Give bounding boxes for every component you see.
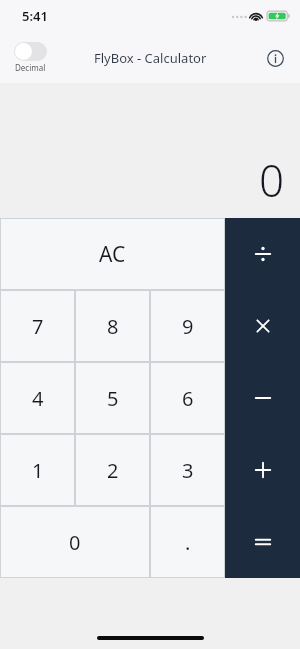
staticText: 9 — [182, 313, 194, 340]
button[interactable]: . — [150, 506, 225, 578]
staticText: FlyBox - Calculator — [94, 49, 207, 67]
staticText: 8 — [107, 313, 119, 340]
staticText: 0 — [258, 150, 284, 210]
button[interactable]: Multiply — [225, 290, 300, 362]
staticText: 3 — [182, 457, 194, 484]
button[interactable]: Divide — [225, 218, 300, 290]
button[interactable]: 1 — [0, 434, 75, 506]
staticText: 5:41 — [22, 7, 48, 25]
button[interactable]: AC — [0, 218, 225, 290]
button[interactable]: 4 — [0, 362, 75, 434]
button[interactable]: 8 — [75, 290, 150, 362]
button[interactable]: 2 — [75, 434, 150, 506]
staticText: Decimal — [15, 62, 46, 73]
staticText: AC — [99, 240, 126, 269]
staticText: 7 — [32, 313, 44, 340]
staticText: 2 — [107, 457, 119, 484]
button[interactable]: Subtract — [225, 362, 300, 434]
staticText: 6 — [182, 385, 194, 412]
button[interactable]: Add — [225, 434, 300, 506]
button[interactable]: 5 — [75, 362, 150, 434]
staticText: 4 — [32, 385, 44, 412]
button[interactable]: 7 — [0, 290, 75, 362]
staticText: . — [185, 529, 191, 556]
button[interactable]: 6 — [150, 362, 225, 434]
staticText: 5 — [107, 385, 119, 412]
button[interactable]: Decimal — [14, 42, 47, 73]
staticText: 0 — [69, 529, 81, 556]
button[interactable]: Equals — [225, 506, 300, 578]
button[interactable]: Info — [260, 43, 290, 73]
button[interactable]: 9 — [150, 290, 225, 362]
button[interactable]: 0 — [0, 506, 150, 578]
button[interactable]: 3 — [150, 434, 225, 506]
staticText: 1 — [32, 457, 44, 484]
